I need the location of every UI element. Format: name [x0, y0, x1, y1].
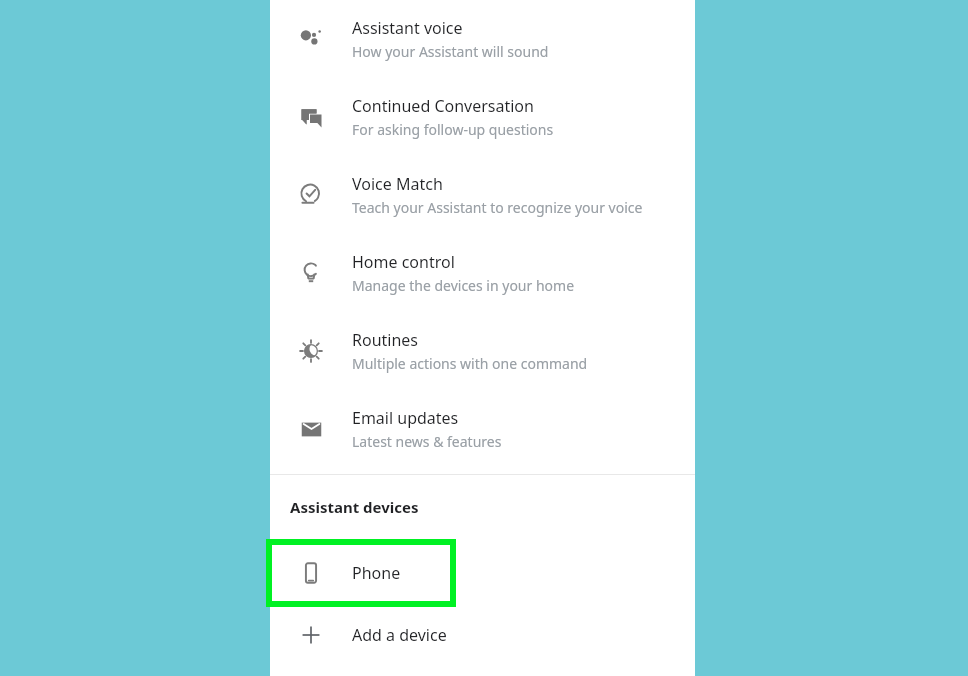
- button[interactable]: Routines: [270, 312, 695, 390]
- staticText: Latest news & features: [352, 432, 502, 451]
- button[interactable]: Add a device: [270, 607, 695, 663]
- staticText: Continued Conversation: [352, 95, 534, 117]
- button[interactable]: Email updates: [270, 390, 695, 468]
- staticText: Phone: [352, 562, 401, 584]
- staticText: Routines: [352, 329, 419, 351]
- staticText: Email updates: [352, 407, 459, 429]
- staticText: Teach your Assistant to recognize your v…: [352, 198, 643, 217]
- button[interactable]: Voice Match: [270, 156, 695, 234]
- staticText: Assistant devices: [290, 497, 419, 517]
- staticText: How your Assistant will sound: [352, 42, 549, 61]
- button[interactable]: Home control: [270, 234, 695, 312]
- staticText: Multiple actions with one command: [352, 354, 588, 373]
- staticText: Voice Match: [352, 173, 443, 195]
- staticText: Assistant voice: [352, 17, 463, 39]
- staticText: Add a device: [352, 624, 447, 646]
- staticText: Manage the devices in your home: [352, 276, 575, 295]
- button[interactable]: Continued Conversation: [270, 78, 695, 156]
- button[interactable]: Phone device: [266, 539, 456, 607]
- staticText: Home control: [352, 251, 455, 273]
- button[interactable]: Assistant voice: [270, 0, 695, 78]
- staticText: For asking follow-up questions: [352, 120, 554, 139]
